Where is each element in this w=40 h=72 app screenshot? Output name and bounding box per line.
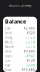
button[interactable]: Stock bbox=[3, 49, 37, 54]
staticText: Week bbox=[5, 41, 12, 44]
button[interactable]: Hold bbox=[3, 31, 37, 35]
staticText: +5.7% bbox=[26, 45, 35, 49]
button[interactable]: Divs bbox=[3, 58, 37, 63]
staticText: $9,840 bbox=[24, 50, 35, 53]
staticText: +0.4% bbox=[26, 64, 35, 67]
staticText: Divs bbox=[5, 59, 10, 62]
staticText: Month bbox=[5, 45, 14, 49]
staticText: Balance bbox=[5, 18, 26, 25]
staticText: Total bbox=[5, 68, 11, 72]
button[interactable]: Rate bbox=[3, 63, 37, 68]
staticText: +$942 bbox=[25, 54, 35, 58]
staticText: Gains bbox=[5, 54, 12, 58]
button[interactable]: Week bbox=[3, 40, 37, 45]
staticText: $2,480 bbox=[24, 27, 35, 30]
staticText: +3.1% bbox=[26, 41, 35, 44]
staticText: Today bbox=[5, 36, 12, 39]
staticText: Rate bbox=[5, 64, 11, 67]
button[interactable]: Month bbox=[3, 45, 37, 49]
staticText: $128 bbox=[27, 59, 35, 62]
staticText: Stock bbox=[5, 50, 11, 53]
button[interactable]: Today bbox=[3, 35, 37, 40]
staticText: Account Summary bbox=[9, 4, 31, 7]
staticText: Cash bbox=[5, 27, 11, 30]
staticText: $13,684 bbox=[22, 68, 35, 72]
staticText: $320 bbox=[27, 31, 35, 35]
staticText: +1.2% bbox=[26, 36, 35, 39]
button[interactable]: Cash bbox=[3, 26, 37, 31]
staticText: Hold bbox=[5, 31, 12, 35]
button[interactable]: Gains bbox=[3, 54, 37, 58]
button[interactable]: Total bbox=[3, 68, 37, 72]
